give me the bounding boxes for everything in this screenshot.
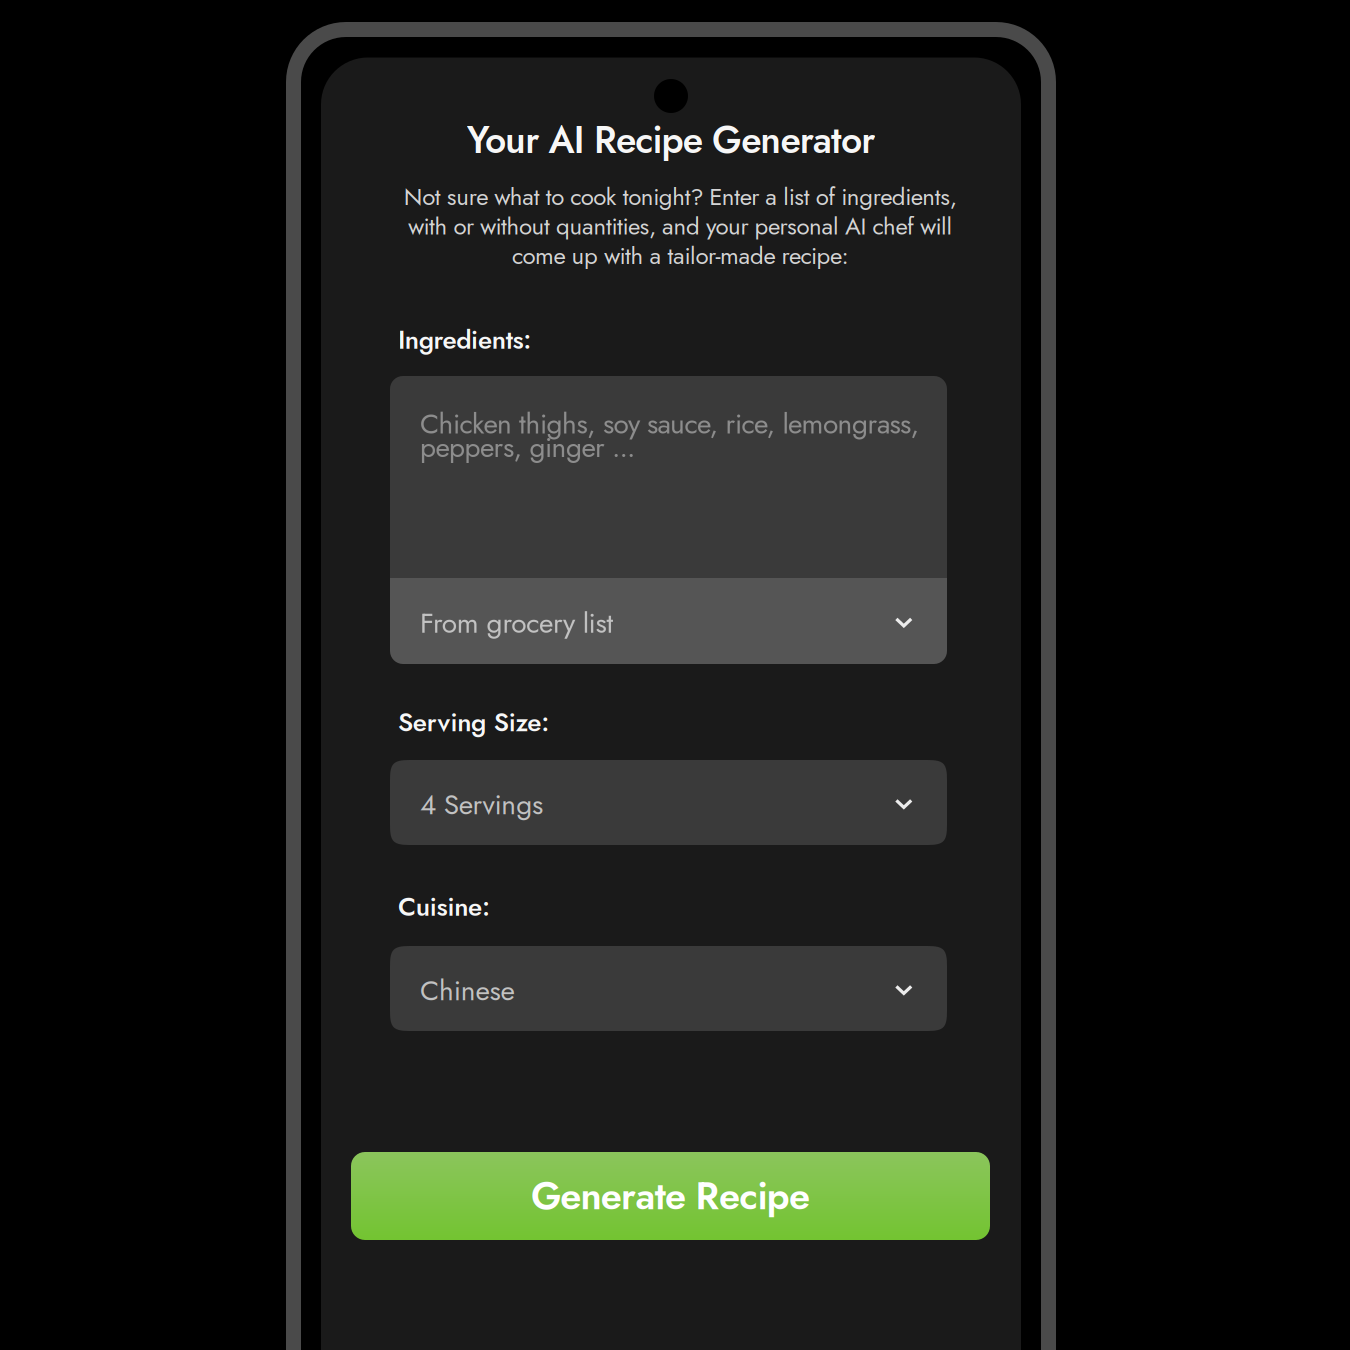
staticText: 4 Servings: [420, 784, 543, 825]
staticText: Ingredients:: [398, 321, 531, 359]
button[interactable]: From grocery list: [390, 578, 947, 664]
staticText: Serving Size:: [398, 703, 549, 741]
button[interactable]: 4 Servings: [390, 760, 947, 845]
staticText: From grocery list: [420, 603, 613, 643]
button[interactable]: Chinese: [390, 946, 947, 1031]
staticText: Not sure what to cook tonight? Enter a l…: [403, 182, 956, 270]
button[interactable]: Generate Recipe: [351, 1152, 990, 1240]
staticText: Your AI Recipe Generator: [467, 113, 875, 167]
button[interactable]: Chicken thighs, soy sauce, rice, lemongr…: [390, 376, 947, 578]
staticText: Generate Recipe: [531, 1168, 810, 1223]
staticText: Cuisine:: [398, 888, 490, 926]
staticText: Chinese: [420, 970, 514, 1011]
staticText: Chicken thighs, soy sauce, rice, lemongr…: [420, 412, 919, 459]
